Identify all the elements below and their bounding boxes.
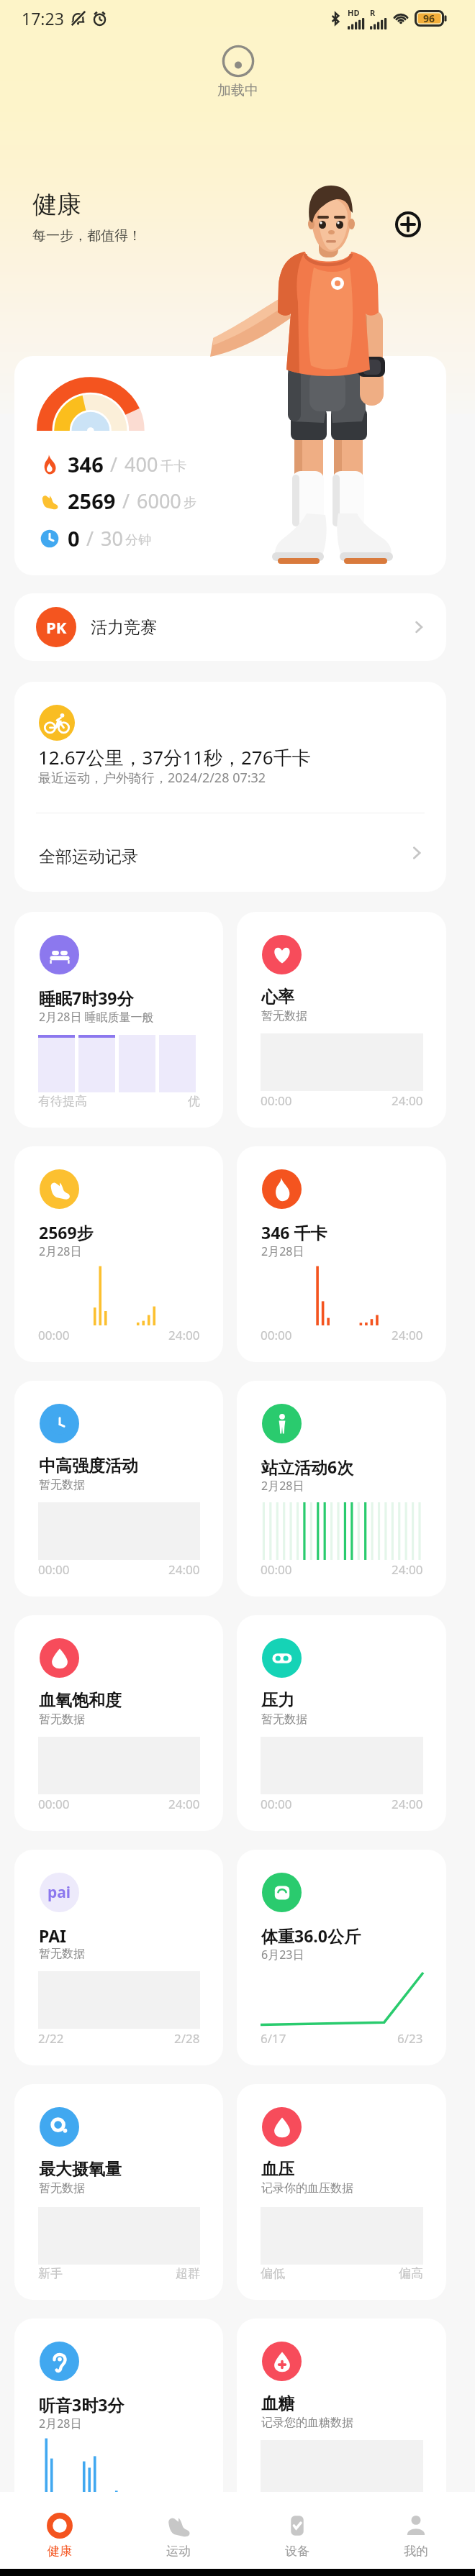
staticText: 00:00: [261, 1561, 292, 1578]
staticText: 24:00: [392, 1796, 423, 1812]
staticText: 全部运动记录: [39, 846, 138, 867]
staticText: 有待提高: [38, 1094, 87, 1109]
staticText: 24:00: [168, 1796, 200, 1812]
staticText: 记录您的血糖数据: [261, 2416, 353, 2430]
button[interactable]: PK: [14, 593, 446, 661]
staticText: 健康: [32, 189, 81, 220]
button[interactable]: 心率: [237, 912, 446, 1128]
staticText: 2/22: [38, 2030, 64, 2047]
button[interactable]: 听音3时3分: [14, 2319, 223, 2534]
staticText: 暂无数据: [261, 1712, 307, 1727]
staticText: 偏高: [399, 2266, 423, 2281]
staticText: 00:00: [261, 1327, 292, 1343]
staticText: 96: [423, 12, 435, 25]
button[interactable]: pai: [14, 1850, 223, 2065]
staticText: 00:00: [38, 2499, 70, 2516]
staticText: 6/23: [397, 2030, 423, 2047]
staticText: 暂无数据: [39, 2181, 85, 2196]
staticText: 体重36.0公斤: [261, 1924, 361, 1947]
staticText: 暂无数据: [261, 1009, 307, 1023]
staticText: /: [122, 488, 130, 514]
staticText: 6/17: [261, 2030, 286, 2047]
button[interactable]: 健康: [0, 2492, 119, 2569]
staticText: 346 千卡: [261, 1221, 327, 1243]
button[interactable]: 设备: [237, 2492, 356, 2569]
staticText: 听音3时3分: [39, 2393, 125, 2416]
staticText: PK: [46, 616, 67, 638]
button[interactable]: 中高强度活动: [14, 1381, 223, 1597]
staticText: 偏低: [261, 2266, 285, 2281]
staticText: 超群: [176, 2266, 200, 2281]
staticText: 346: [68, 450, 104, 478]
button[interactable]: 睡眠7时39分: [14, 912, 223, 1128]
staticText: 分钟: [125, 532, 151, 549]
button[interactable]: 2569步: [14, 1146, 223, 1362]
staticText: 2/28: [174, 2030, 200, 2047]
staticText: 血糖: [261, 2393, 294, 2414]
staticText: 24:00: [392, 1327, 423, 1343]
staticText: 暂无数据: [39, 1712, 85, 1727]
button[interactable]: 压力: [237, 1615, 446, 1831]
button[interactable]: 运动: [119, 2492, 237, 2569]
staticText: 心率: [261, 987, 294, 1008]
staticText: 00:00: [261, 1796, 292, 1812]
staticText: 最大摄氧量: [39, 2159, 122, 2180]
staticText: 6月23日: [261, 1947, 304, 1963]
staticText: 24:00: [168, 1561, 200, 1578]
staticText: 活力竞赛: [91, 617, 157, 638]
staticText: pai: [47, 1882, 71, 1903]
staticText: 24:00: [392, 1561, 423, 1578]
button[interactable]: 体重36.0公斤: [237, 1850, 446, 2065]
staticText: 血压: [261, 2159, 294, 2180]
staticText: 中高强度活动: [39, 1456, 138, 1476]
staticText: 最近运动，户外骑行，2024/2/28 07:32: [38, 769, 266, 787]
staticText: 暂无数据: [39, 1947, 85, 1961]
staticText: 站立活动6次: [261, 1456, 354, 1478]
button[interactable]: 346 千卡: [237, 1146, 446, 1362]
staticText: 00:00: [38, 1327, 70, 1343]
staticText: 17:23: [22, 7, 64, 29]
staticText: 00:00: [261, 1092, 292, 1109]
button[interactable]: 最大摄氧量: [14, 2084, 223, 2300]
staticText: 千卡: [160, 458, 186, 475]
staticText: PAI: [39, 1924, 66, 1947]
staticText: 我的: [404, 2544, 428, 2559]
staticText: /: [110, 451, 118, 478]
staticText: 睡眠7时39分: [39, 987, 134, 1009]
staticText: 00:00: [38, 1796, 70, 1812]
staticText: 设备: [285, 2544, 309, 2559]
staticText: 压力: [261, 1690, 294, 1711]
staticText: 2569步: [39, 1221, 94, 1243]
staticText: 运动: [166, 2544, 191, 2559]
staticText: 血氧饱和度: [39, 1690, 122, 1711]
staticText: 优: [188, 1094, 200, 1109]
staticText: 步: [184, 495, 196, 511]
staticText: 2月28日: [261, 1243, 304, 1259]
staticText: 0: [68, 524, 80, 552]
staticText: 新手: [38, 2266, 63, 2281]
staticText: 2月28日: [39, 2416, 82, 2431]
staticText: 12.67公里，37分11秒，276千卡: [38, 744, 311, 770]
staticText: R: [370, 7, 376, 18]
button[interactable]: 全部运动记录: [14, 814, 446, 892]
staticText: 健康: [47, 2544, 72, 2559]
staticText: 2月28日: [39, 1243, 82, 1259]
button[interactable]: 12.67公里，37分11秒，276千卡: [14, 682, 446, 813]
button[interactable]: 血氧饱和度: [14, 1615, 223, 1831]
button[interactable]: 添加: [392, 209, 424, 240]
staticText: 400: [125, 451, 158, 478]
staticText: 2569: [68, 487, 116, 515]
button[interactable]: 血压: [237, 2084, 446, 2300]
staticText: 24:00: [168, 1327, 200, 1343]
button[interactable]: 血糖: [237, 2319, 446, 2534]
staticText: 00:00: [38, 1561, 70, 1578]
staticText: 暂无数据: [39, 1478, 85, 1492]
staticText: 6000: [137, 488, 181, 514]
staticText: 2月28日: [261, 1478, 304, 1494]
staticText: 30: [101, 525, 123, 552]
button[interactable]: 我的: [356, 2492, 475, 2569]
button[interactable]: 站立活动6次: [237, 1381, 446, 1597]
